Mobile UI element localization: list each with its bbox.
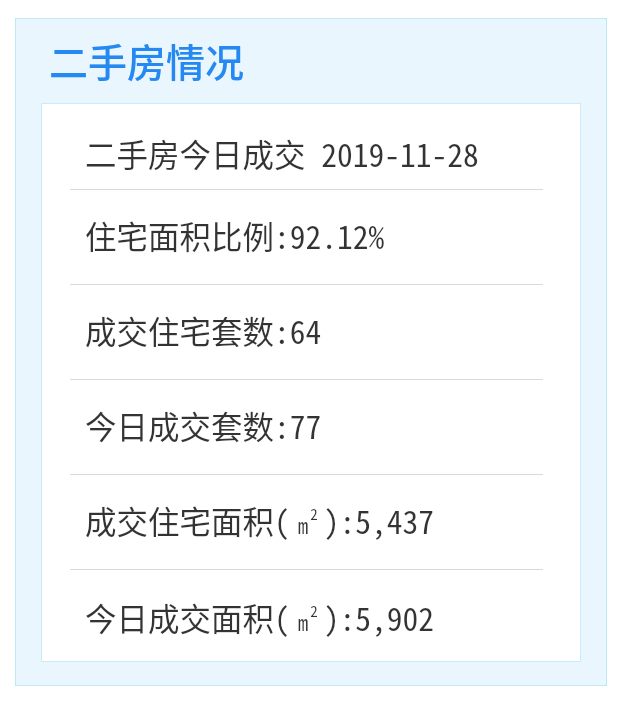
staticText: 今日成交面积(m2):5,902 [85,594,435,640]
staticText: 二手房情况 [49,32,245,88]
button[interactable]: 成交住宅面积(m2):5,437 [41,475,581,569]
staticText: 今日成交套数:77 [85,402,322,448]
staticText: 成交住宅套数:64 [85,307,322,353]
staticText: 二手房今日成交 2019-11-28 [85,130,479,176]
button[interactable]: 今日成交面积(m2):5,902 [41,570,581,660]
button[interactable]: 二手房今日成交 2019-11-28 [41,103,581,189]
staticText: 住宅面积比例:92.12% [85,212,385,258]
staticText: 成交住宅面积(m2):5,437 [85,497,435,543]
button[interactable]: 成交住宅套数:64 [41,285,581,379]
button[interactable]: 今日成交套数:77 [41,380,581,474]
button[interactable]: 住宅面积比例:92.12% [41,190,581,284]
